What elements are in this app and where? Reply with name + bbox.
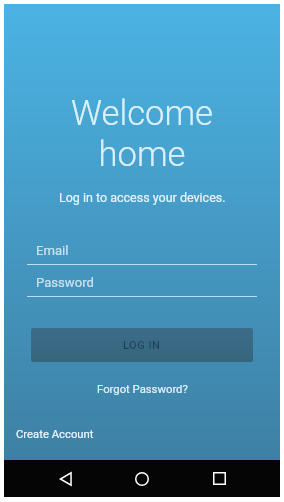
staticText: Log in to access your devices. bbox=[59, 190, 226, 205]
button[interactable]: LOG IN bbox=[31, 328, 253, 362]
staticText: Email bbox=[36, 243, 69, 258]
button[interactable]: Home bbox=[126, 460, 158, 497]
button[interactable]: Email bbox=[27, 243, 257, 258]
staticText: Password bbox=[36, 275, 94, 290]
button[interactable]: Forgot Password? bbox=[91, 379, 194, 400]
button[interactable]: Password bbox=[27, 275, 257, 290]
button[interactable]: Create Account bbox=[10, 423, 100, 446]
staticText: LOG IN bbox=[123, 339, 161, 352]
staticText: Forgot Password? bbox=[97, 383, 188, 396]
button[interactable]: Recent apps bbox=[203, 460, 235, 497]
staticText: Welcome home bbox=[71, 93, 213, 175]
staticText: Create Account bbox=[16, 428, 94, 441]
button[interactable]: Back bbox=[50, 460, 82, 497]
